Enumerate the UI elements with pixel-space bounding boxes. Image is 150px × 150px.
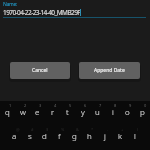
button[interactable]: 8: [105, 101, 120, 123]
staticText: 1970-04-22-23-14-40_MMB29P: [3, 8, 81, 17]
staticText: g: [72, 130, 77, 141]
button[interactable]: -: [97, 125, 112, 147]
staticText: f: [58, 130, 61, 141]
staticText: k: [118, 130, 122, 141]
button[interactable]: 0: [135, 101, 150, 123]
button[interactable]: 4: [45, 101, 60, 123]
staticText: e: [35, 106, 40, 117]
button[interactable]: %: [52, 125, 67, 147]
staticText: 6: [84, 103, 87, 108]
staticText: u: [95, 106, 100, 117]
staticText: 7: [99, 103, 102, 108]
button[interactable]: Cancel: [10, 62, 70, 79]
staticText: q: [5, 106, 10, 117]
staticText: 2: [24, 103, 27, 108]
button[interactable]: 1: [0, 101, 15, 123]
staticText: +: [121, 127, 124, 132]
staticText: 9: [129, 103, 132, 108]
button[interactable]: Append Date: [79, 62, 140, 79]
button[interactable]: 6: [75, 101, 90, 123]
button[interactable]: $: [37, 125, 52, 147]
staticText: *: [91, 127, 94, 132]
staticText: r: [51, 106, 55, 117]
button[interactable]: #: [22, 125, 37, 147]
staticText: o: [125, 106, 130, 117]
staticText: h: [87, 130, 92, 141]
staticText: Cancel: [32, 67, 48, 74]
button[interactable]: 3: [30, 101, 45, 123]
staticText: l: [134, 130, 136, 141]
staticText: i: [112, 106, 114, 117]
button[interactable]: +: [112, 125, 127, 147]
staticText: t: [66, 106, 69, 117]
button[interactable]: *: [82, 125, 97, 147]
staticText: 8: [114, 103, 117, 108]
button[interactable]: (: [127, 125, 142, 147]
staticText: 1: [9, 103, 12, 108]
staticText: &: [76, 127, 79, 132]
staticText: 5: [69, 103, 72, 108]
staticText: 4: [54, 103, 57, 108]
staticText: $: [46, 127, 49, 132]
staticText: a: [12, 130, 17, 141]
staticText: Append Date: [94, 67, 125, 74]
staticText: w: [20, 106, 26, 117]
staticText: (: [137, 127, 139, 132]
staticText: j: [104, 130, 106, 141]
button[interactable]: &: [67, 125, 82, 147]
staticText: y: [81, 106, 85, 117]
staticText: %: [61, 127, 65, 132]
button[interactable]: 7: [90, 101, 105, 123]
staticText: d: [42, 130, 47, 141]
staticText: s: [28, 130, 32, 141]
staticText: 0: [144, 103, 147, 108]
button[interactable]: @: [7, 125, 22, 147]
button[interactable]: 2: [15, 101, 30, 123]
staticText: @: [16, 127, 20, 132]
staticText: Name:: [3, 1, 17, 8]
staticText: #: [31, 127, 34, 132]
button[interactable]: 5: [60, 101, 75, 123]
staticText: p: [140, 106, 145, 117]
button[interactable]: 9: [120, 101, 135, 123]
staticText: 3: [39, 103, 42, 108]
